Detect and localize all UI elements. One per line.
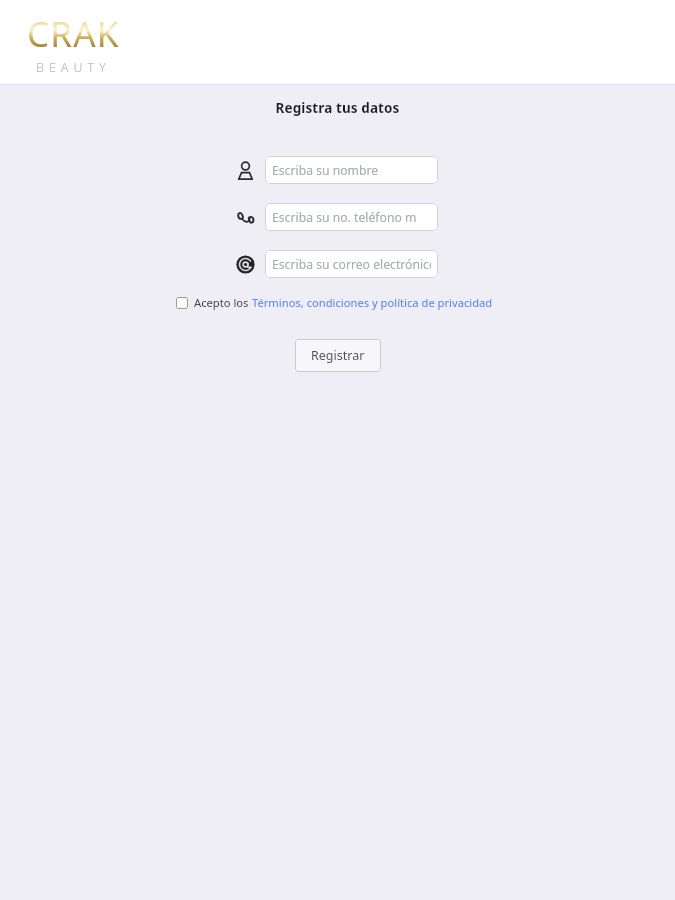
button[interactable]: Escriba su correo electrónico [265,250,438,278]
button[interactable]: Registrar [295,339,381,372]
staticText: Escriba su correo electrónico [272,256,431,273]
other: Nombre [234,159,256,181]
button[interactable]: Acepto los términos [176,297,188,309]
button[interactable]: Escriba su nombre [265,156,438,184]
button[interactable]: Términos, condiciones y política de priv… [252,295,493,310]
staticText: Términos, condiciones y política de priv… [252,295,493,310]
staticText: Escriba su nombre [272,162,379,179]
staticText: Escriba su no. teléfono m [272,209,417,226]
other: Teléfono [234,206,256,228]
other: Correo electrónico [234,253,256,275]
staticText: Registrar [311,347,365,364]
staticText: Registra tus datos [0,99,675,117]
staticText: CRAK [27,10,120,58]
staticText: Acepto los [194,295,252,310]
button[interactable]: Escriba su no. teléfono m [265,203,438,231]
staticText: BEAUTY [36,59,111,76]
